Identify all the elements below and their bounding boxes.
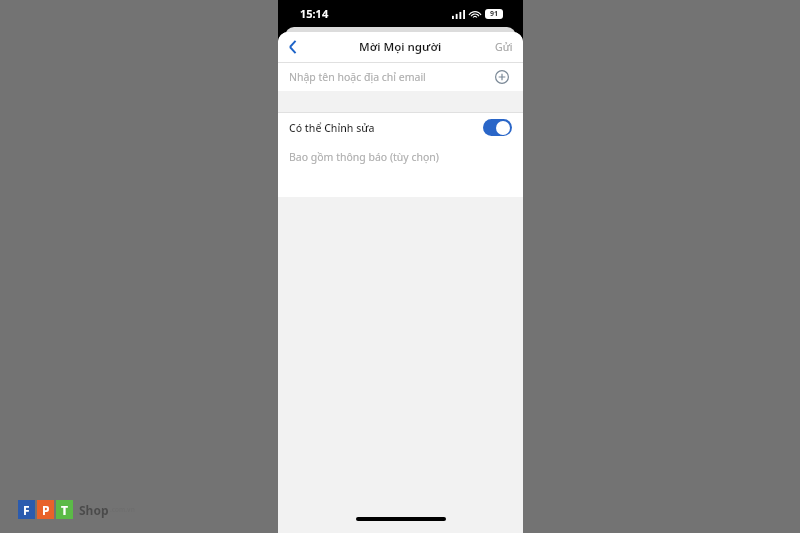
button[interactable]: Nhập tên hoặc địa chỉ email [278,63,523,91]
staticText: Bao gồm thông báo (tùy chọn) [289,150,439,164]
staticText: T [61,502,68,518]
button[interactable]: Bao gồm thông báo (tùy chọn) [278,142,523,197]
staticText: Có thể Chỉnh sửa [289,121,483,135]
staticText: Mời Mọi người [359,39,442,55]
staticText: Nhập tên hoặc địa chỉ email [289,70,492,84]
staticText: 15:14 [300,6,329,21]
button[interactable]: Back [278,32,308,62]
staticText: Gửi [495,40,513,54]
staticText: Shop [79,502,109,518]
staticText: P [42,502,50,518]
button[interactable]: Can edit toggle, on [483,119,512,136]
button[interactable]: Có thể Chỉnh sửa [278,113,523,142]
staticText: 91 [490,9,499,19]
button[interactable]: Add contact [492,67,512,87]
button[interactable]: Gửi [485,34,523,60]
staticText: F [23,502,30,518]
